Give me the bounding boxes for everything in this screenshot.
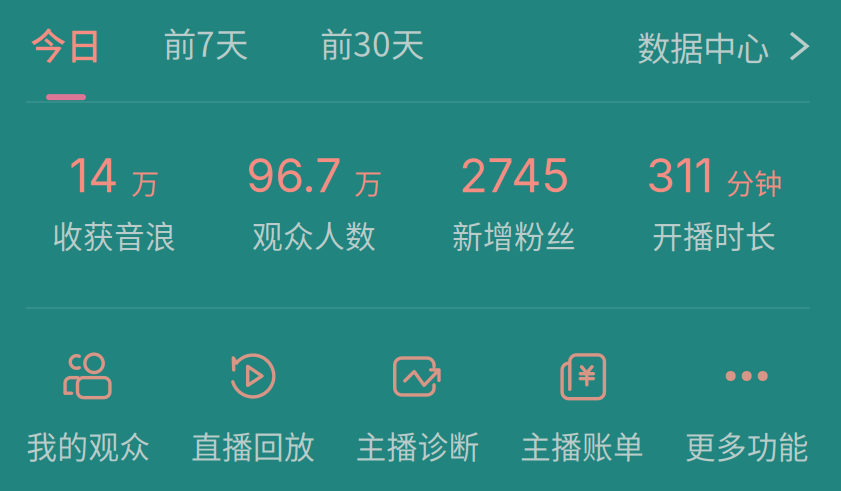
staticText: 观众人数 xyxy=(252,212,376,257)
staticText: 分钟 xyxy=(726,162,782,202)
staticText: 更多功能 xyxy=(685,423,809,467)
staticText: 14 xyxy=(69,147,118,203)
staticText: 2745 xyxy=(459,147,569,203)
button[interactable]: 前30天 xyxy=(320,18,424,96)
button[interactable]: 前7天 xyxy=(163,18,248,96)
staticText: 311 xyxy=(646,147,713,203)
staticText: 万 xyxy=(131,162,159,202)
staticText: 主播诊断 xyxy=(355,423,479,467)
button[interactable]: 数据中心 xyxy=(637,18,807,70)
button[interactable]: 直播回放 xyxy=(171,353,335,467)
button[interactable]: 今日 xyxy=(30,18,102,100)
staticText: 前30天 xyxy=(320,18,424,66)
staticText: 数据中心 xyxy=(637,22,769,70)
button[interactable]: 主播诊断 xyxy=(335,353,500,467)
button[interactable]: 更多功能 xyxy=(664,353,829,467)
staticText: 主播账单 xyxy=(520,423,644,467)
staticText: 万 xyxy=(354,162,382,202)
staticText: 直播回放 xyxy=(191,423,315,467)
staticText: 收获音浪 xyxy=(52,212,176,257)
staticText: 今日 xyxy=(30,18,102,70)
staticText: 新增粉丝 xyxy=(452,212,576,257)
staticText: 我的观众 xyxy=(26,423,150,467)
staticText: 96.7 xyxy=(246,147,341,203)
staticText: 开播时长 xyxy=(652,212,776,257)
button[interactable]: 主播账单 xyxy=(500,353,664,467)
button[interactable]: 我的观众 xyxy=(6,353,171,467)
staticText: 前7天 xyxy=(163,18,248,66)
